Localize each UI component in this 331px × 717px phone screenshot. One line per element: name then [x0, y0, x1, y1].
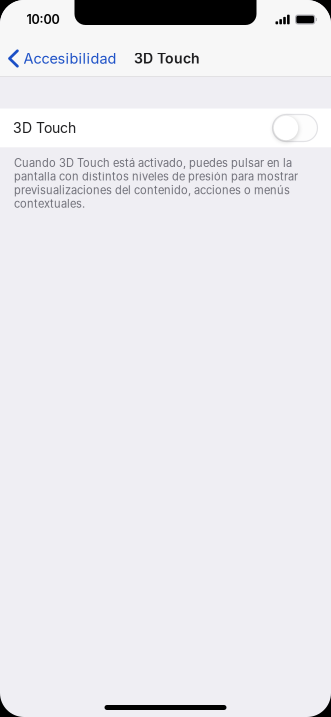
- staticText: 3D Touch: [13, 119, 76, 136]
- staticText: contextuales.: [14, 197, 85, 210]
- staticText: pantalla con distintos niveles de presió…: [14, 170, 298, 183]
- button[interactable]: Accesibilidad: [0, 40, 126, 77]
- staticText: Cuando 3D Touch está activado, puedes pu…: [14, 156, 292, 170]
- staticText: 10:00: [26, 12, 59, 27]
- staticText: previsualizaciones del contenido, accion…: [14, 183, 290, 197]
- staticText: 3D Touch: [134, 50, 200, 67]
- staticText: Accesibilidad: [23, 50, 116, 67]
- button[interactable]: 3D Touch: [0, 108, 331, 147]
